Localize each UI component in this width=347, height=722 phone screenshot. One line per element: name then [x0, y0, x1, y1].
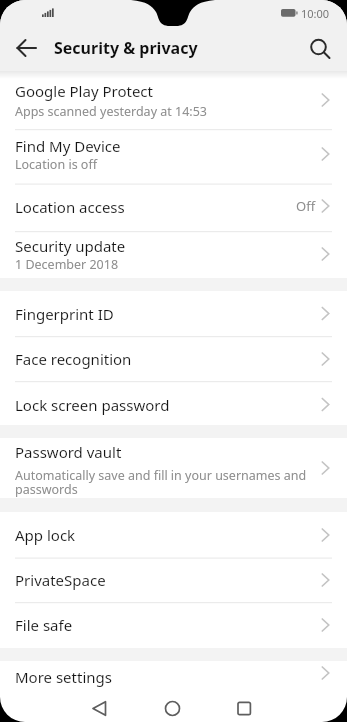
staticText: Lock screen password	[15, 395, 170, 415]
staticText: Location is off	[15, 156, 98, 173]
staticText: Security & privacy	[54, 37, 198, 59]
staticText: Security update	[15, 236, 126, 256]
staticText: Apps scanned yesterday at 14:53	[15, 103, 207, 120]
staticText: Off	[296, 197, 316, 215]
staticText: File safe	[15, 615, 73, 635]
staticText: Fingerprint ID	[15, 304, 114, 324]
staticText: Google Play Protect	[15, 81, 153, 101]
staticText: Find My Device	[15, 136, 121, 156]
staticText: Location access	[15, 197, 125, 217]
staticText: 1 December 2018	[15, 256, 119, 273]
staticText: More settings	[15, 667, 112, 687]
staticText: PrivateSpace	[15, 570, 106, 590]
staticText: Face recognition	[15, 349, 132, 369]
staticText: 10:00	[301, 6, 330, 21]
staticText: Automatically save and fill in your user…	[15, 467, 307, 498]
staticText: Password vault	[15, 442, 122, 462]
staticText: App lock	[15, 525, 76, 545]
